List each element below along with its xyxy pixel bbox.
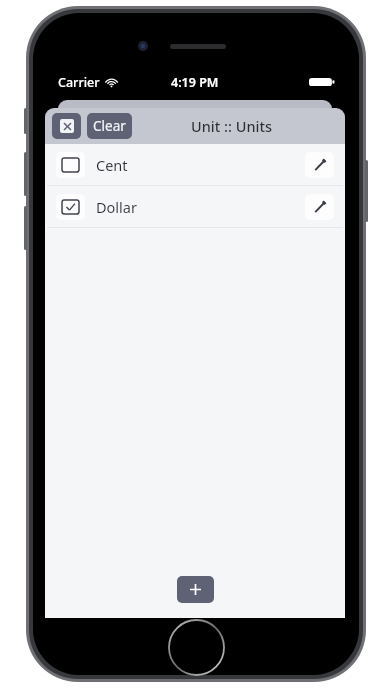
staticText: Clear [93, 117, 126, 135]
button[interactable]: Edit Cent [305, 152, 334, 178]
staticText: 4:19 PM [171, 74, 219, 91]
staticText: Unit :: Units [191, 116, 272, 136]
button[interactable]: Edit Dollar [305, 194, 334, 220]
button[interactable]: Checked [56, 194, 85, 220]
staticText: Dollar [96, 197, 137, 217]
button[interactable]: Checked [45, 186, 345, 227]
button[interactable]: Unchecked [56, 152, 85, 178]
staticText: Carrier [58, 74, 100, 91]
button[interactable]: Close [52, 113, 81, 139]
staticText: Cent [96, 155, 128, 175]
button[interactable]: Add [177, 576, 214, 603]
button[interactable]: Unchecked [45, 144, 345, 185]
button[interactable]: Clear [87, 113, 132, 139]
